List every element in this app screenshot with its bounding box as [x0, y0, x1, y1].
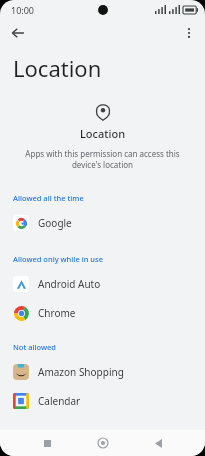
staticText: Not allowed — [13, 342, 57, 352]
staticText: 10:00 — [11, 4, 35, 16]
staticText: Allowed all the time — [13, 193, 84, 203]
staticText: Chrome — [38, 306, 76, 320]
button[interactable]: Android Auto — [0, 269, 205, 298]
button[interactable]: Back — [6, 21, 30, 45]
staticText: Apps with this permission can access thi… — [14, 148, 191, 170]
button[interactable]: More options — [177, 21, 201, 45]
button[interactable]: Amazon Shopping — [0, 357, 205, 386]
button[interactable]: Recents — [36, 432, 58, 454]
staticText: Google — [38, 216, 72, 230]
button[interactable]: Calendar — [0, 386, 205, 415]
button[interactable]: Google — [0, 208, 205, 237]
staticText: Android Auto — [38, 277, 101, 291]
staticText: Allowed only while in use — [13, 254, 103, 264]
staticText: Location — [13, 53, 102, 83]
button[interactable]: Home — [92, 432, 114, 454]
button[interactable]: Back — [147, 432, 169, 454]
staticText: Amazon Shopping — [38, 365, 124, 379]
button[interactable]: Chrome — [0, 298, 205, 327]
staticText: Location — [80, 126, 126, 141]
staticText: Calendar — [38, 394, 81, 408]
